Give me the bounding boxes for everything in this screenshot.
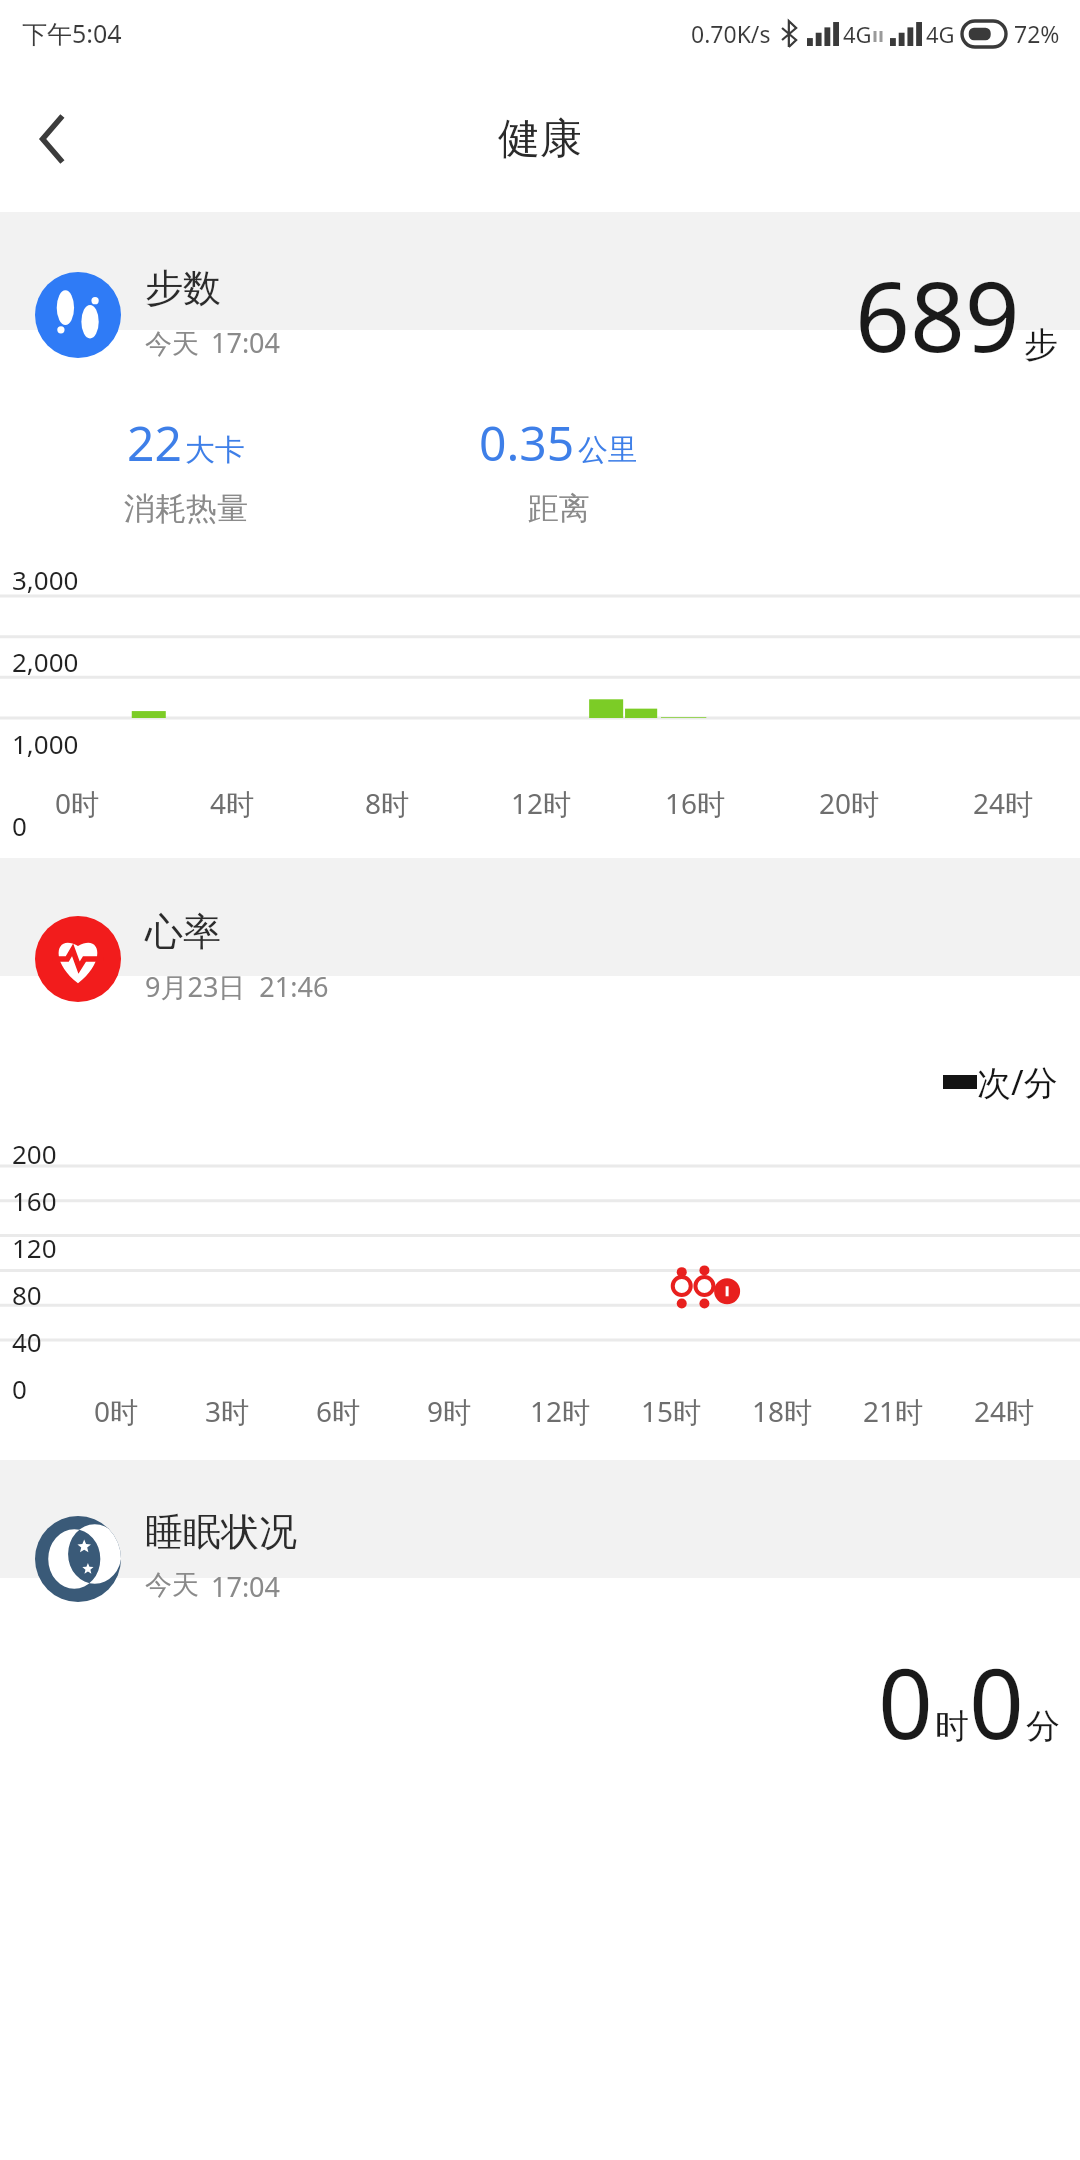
button[interactable]: 0.35 [372, 388, 745, 548]
staticText: 0时 [55, 784, 100, 822]
staticText: 4时 [210, 784, 255, 822]
staticText: 9月23日 21:46 [145, 968, 329, 1005]
staticText: 24时 [973, 784, 1034, 822]
staticText: 分 [1026, 1705, 1060, 1748]
staticText: 22 [127, 410, 182, 475]
staticText: 4G [926, 19, 955, 49]
staticText: 12时 [530, 1392, 591, 1430]
staticText: 15时 [641, 1392, 702, 1430]
staticText: 心率 [145, 908, 221, 956]
staticText: 9时 [427, 1392, 472, 1430]
button[interactable]: 步数 [0, 212, 1080, 388]
staticText: 0.35 [479, 410, 575, 475]
staticText: 0 [12, 1371, 27, 1406]
staticText: 2,000 [12, 644, 79, 679]
staticText: 次/分 [977, 1059, 1058, 1105]
staticText: 睡眠状况 [145, 1508, 297, 1556]
button[interactable]: 心率 [0, 858, 1080, 1034]
staticText: 步数 [145, 264, 221, 312]
staticText: 18时 [752, 1392, 813, 1430]
staticText: 120 [12, 1230, 57, 1265]
button[interactable]: 22 [0, 388, 372, 548]
staticText: 0 [969, 1636, 1024, 1756]
staticText: 大卡 [185, 431, 245, 469]
staticText: 689 [855, 249, 1020, 380]
staticText: 8时 [365, 784, 410, 822]
button[interactable]: 睡眠状况 [0, 1460, 1080, 1636]
staticText: 6时 [316, 1392, 361, 1430]
button[interactable]: Back [18, 103, 90, 175]
staticText: 17:04 [211, 324, 281, 361]
staticText: 0 [878, 1636, 933, 1756]
staticText: 下午5:04 [22, 16, 122, 50]
staticText: 公里 [578, 431, 638, 469]
staticText: 3,000 [12, 562, 79, 597]
staticText: 20时 [819, 784, 880, 822]
staticText: 24时 [974, 1392, 1035, 1430]
staticText: 时 [935, 1705, 969, 1748]
staticText: 72% [1014, 18, 1060, 49]
staticText: 步 [1024, 323, 1058, 366]
staticText: 17:04 [211, 1568, 281, 1605]
staticText: 40 [12, 1324, 42, 1359]
staticText: 距离 [528, 489, 590, 528]
staticText: 0.70K/s [691, 18, 771, 49]
staticText: 160 [12, 1183, 57, 1218]
staticText: 3时 [205, 1392, 250, 1430]
staticText: 健康 [498, 113, 582, 166]
staticText: 今天 [145, 327, 199, 361]
staticText: 12时 [511, 784, 572, 822]
staticText: 21时 [863, 1392, 924, 1430]
staticText: 16时 [665, 784, 726, 822]
staticText: 200 [12, 1136, 57, 1171]
staticText: 消耗热量 [124, 489, 248, 528]
staticText: 4G [843, 19, 872, 49]
staticText: 0 [12, 808, 27, 843]
staticText: 0时 [94, 1392, 139, 1430]
staticText: 80 [12, 1277, 42, 1312]
staticText: 1,000 [12, 726, 79, 761]
staticText: 今天 [145, 1568, 199, 1602]
